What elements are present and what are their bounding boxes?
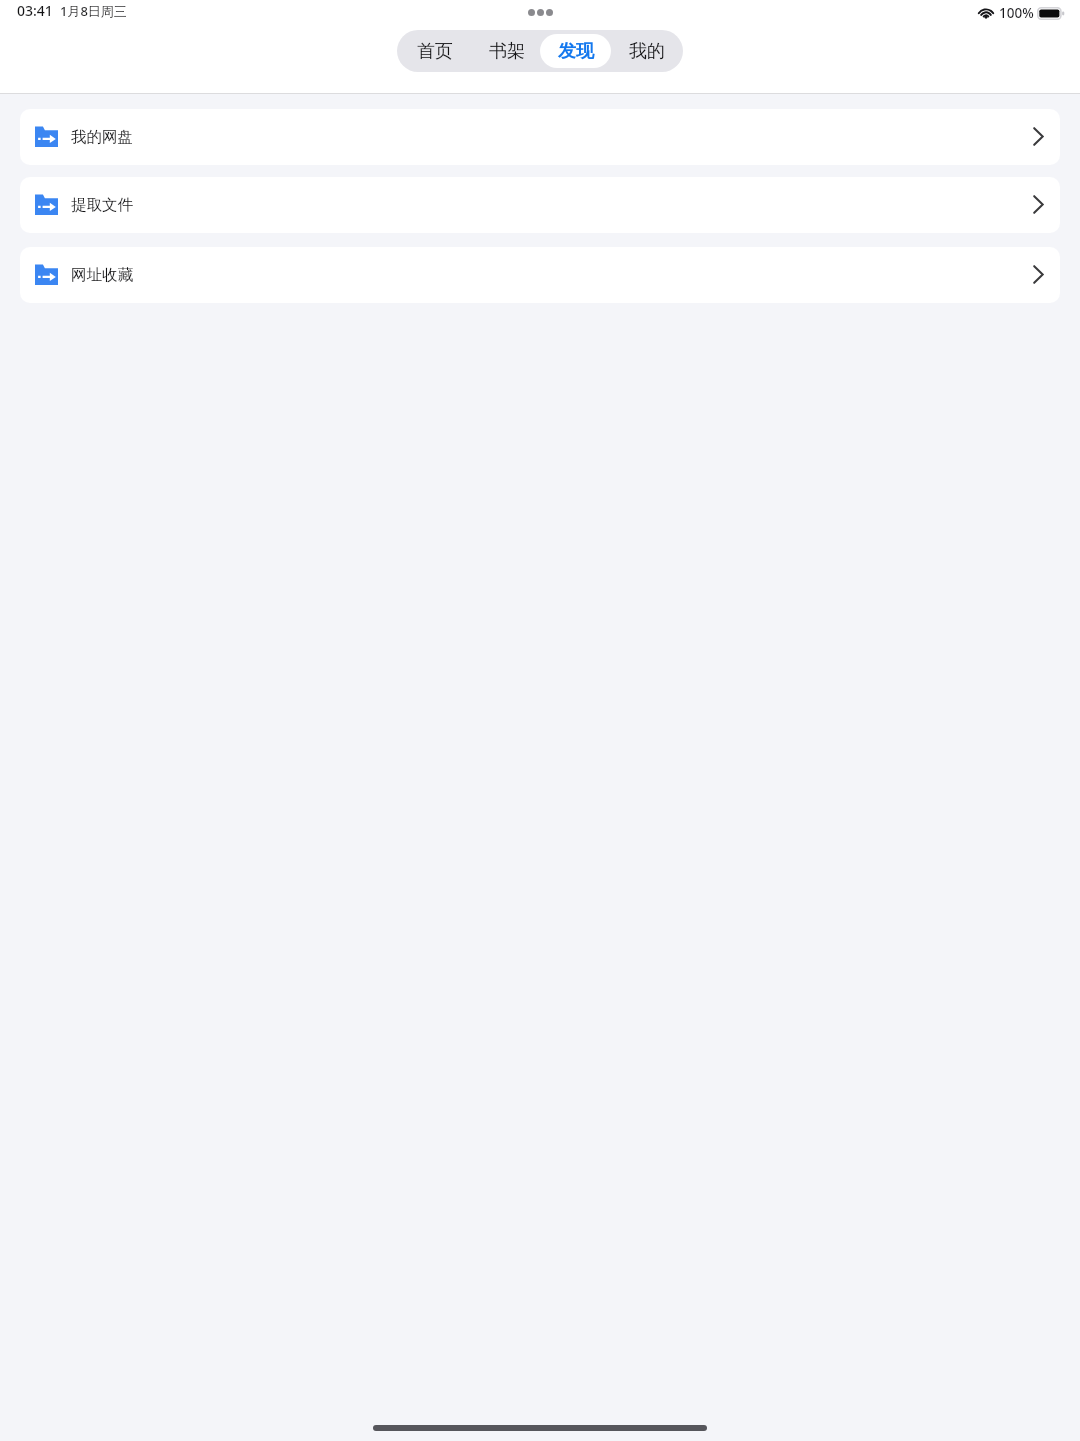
button[interactable]: 我的网盘 (20, 109, 1060, 165)
staticText: 03:41 (17, 1, 53, 20)
button[interactable]: 提取文件 (20, 177, 1060, 233)
staticText: 首页 (417, 40, 453, 63)
staticText: 我的 (629, 40, 665, 63)
staticText: 书架 (489, 40, 525, 63)
other: Wi-Fi (978, 8, 994, 19)
staticText: 提取文件 (71, 195, 133, 215)
staticText: 我的网盘 (71, 127, 133, 147)
button[interactable]: 我的 (611, 34, 683, 68)
button[interactable]: 首页 (397, 34, 473, 68)
button[interactable]: 发现 (540, 34, 611, 68)
button[interactable]: 网址收藏 (20, 247, 1060, 303)
staticText: 1月8日周三 (60, 2, 127, 20)
button[interactable]: 书架 (473, 34, 540, 68)
staticText: 100% (999, 4, 1034, 22)
other: Battery full (1037, 7, 1065, 20)
staticText: 发现 (558, 40, 594, 63)
staticText: 网址收藏 (71, 265, 133, 285)
